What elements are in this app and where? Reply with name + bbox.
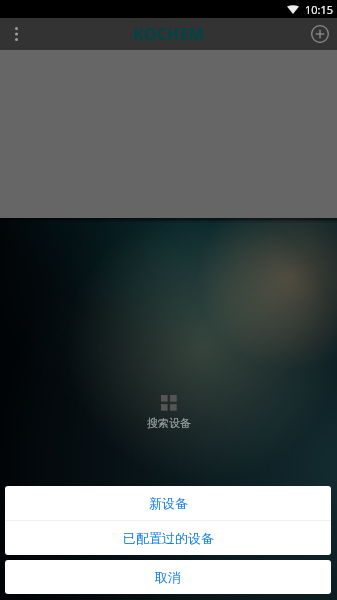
button[interactable]: More options [0,18,32,50]
button[interactable]: 已配置过的设备 [5,521,331,555]
staticText: 10:15 [305,2,334,17]
button[interactable]: Add device [303,18,337,50]
staticText: 搜索设备 [147,416,191,430]
button[interactable]: 取消 [5,560,331,594]
staticText: 已配置过的设备 [123,530,214,546]
staticText: 新设备 [149,495,188,511]
button[interactable]: 新设备 [5,486,331,520]
staticText: 取消 [155,569,181,585]
staticText: KOCHEM [133,23,205,45]
